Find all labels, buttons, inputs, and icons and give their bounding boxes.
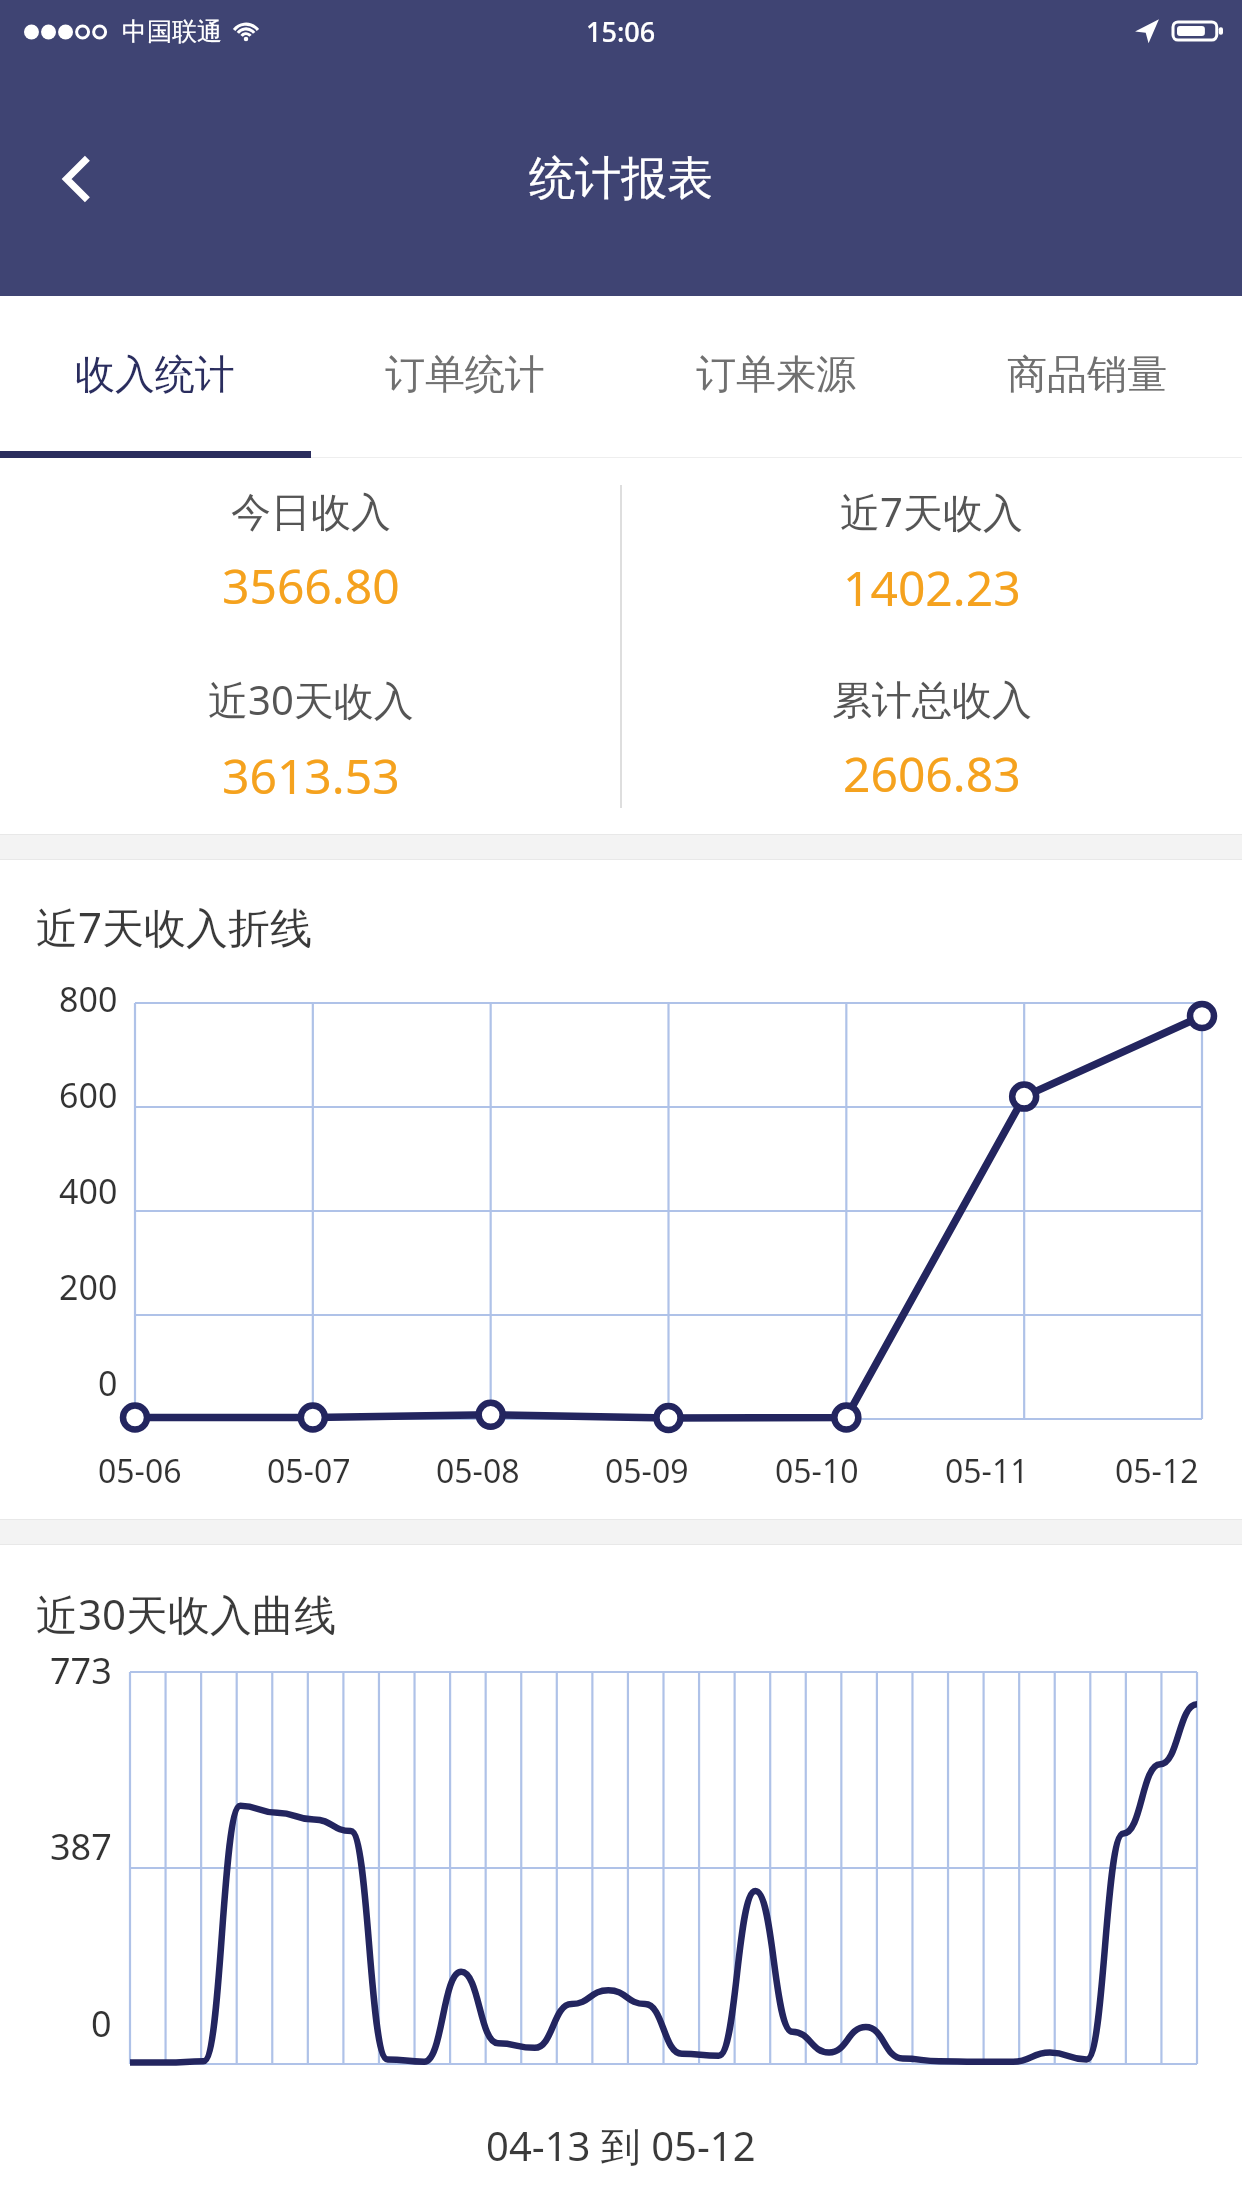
- staticText: 04-13 到 05-12: [486, 2118, 756, 2173]
- staticText: 今日收入: [231, 487, 391, 537]
- staticText: 05-09: [605, 1449, 689, 1493]
- button[interactable]: 收入统计: [0, 296, 310, 451]
- staticText: 600: [59, 1072, 118, 1118]
- button[interactable]: 订单统计: [310, 296, 620, 451]
- staticText: 05-12: [1115, 1449, 1199, 1493]
- staticText: 2606.83: [843, 741, 1021, 806]
- staticText: 1402.23: [843, 555, 1021, 620]
- staticText: 05-08: [436, 1449, 520, 1493]
- staticText: 商品销量: [1007, 349, 1167, 399]
- staticText: 近30天收入曲线: [36, 1585, 337, 1642]
- staticText: 0: [98, 1360, 118, 1406]
- staticText: 05-10: [775, 1449, 859, 1493]
- staticText: 3613.53: [222, 743, 400, 808]
- button[interactable]: 商品销量: [931, 296, 1242, 451]
- staticText: 近30天收入: [208, 672, 414, 727]
- staticText: 387: [50, 1822, 112, 1871]
- staticText: 订单统计: [385, 349, 545, 399]
- staticText: 收入统计: [75, 349, 235, 399]
- staticText: 中国联通: [122, 16, 222, 47]
- staticText: 773: [50, 1646, 112, 1695]
- staticText: 3566.80: [222, 553, 400, 618]
- staticText: 0: [91, 1999, 112, 2048]
- staticText: 05-07: [267, 1449, 351, 1493]
- staticText: 800: [59, 976, 118, 1022]
- staticText: 05-06: [98, 1449, 182, 1493]
- button[interactable]: Back: [22, 124, 132, 234]
- staticText: 15:06: [586, 13, 656, 50]
- staticText: 05-11: [945, 1449, 1029, 1493]
- staticText: 统计报表: [529, 150, 713, 208]
- staticText: 200: [59, 1264, 118, 1310]
- staticText: 近7天收入折线: [36, 898, 313, 955]
- staticText: 订单来源: [696, 349, 856, 399]
- staticText: 累计总收入: [832, 675, 1032, 725]
- button[interactable]: 订单来源: [620, 296, 931, 451]
- staticText: 近7天收入: [840, 484, 1023, 539]
- staticText: 400: [59, 1168, 118, 1214]
